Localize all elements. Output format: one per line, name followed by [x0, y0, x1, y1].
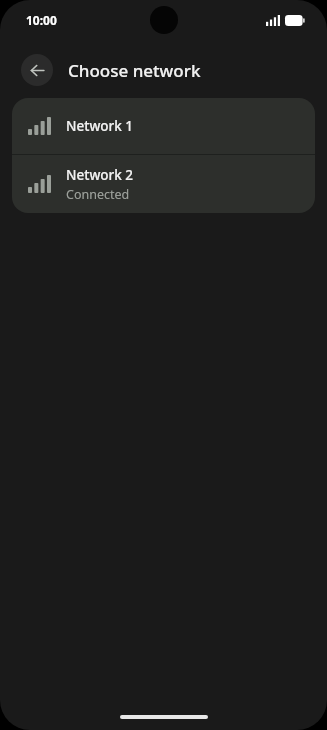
staticText: 10:00: [26, 12, 57, 28]
button[interactable]: Back: [21, 54, 53, 86]
button[interactable]: Network 2: [12, 155, 315, 213]
staticText: Choose network: [68, 59, 201, 82]
staticText: Network 1: [66, 117, 134, 135]
staticText: Network 2: [66, 166, 134, 184]
staticText: Connected: [66, 186, 130, 203]
button[interactable]: Network 1: [12, 98, 315, 154]
